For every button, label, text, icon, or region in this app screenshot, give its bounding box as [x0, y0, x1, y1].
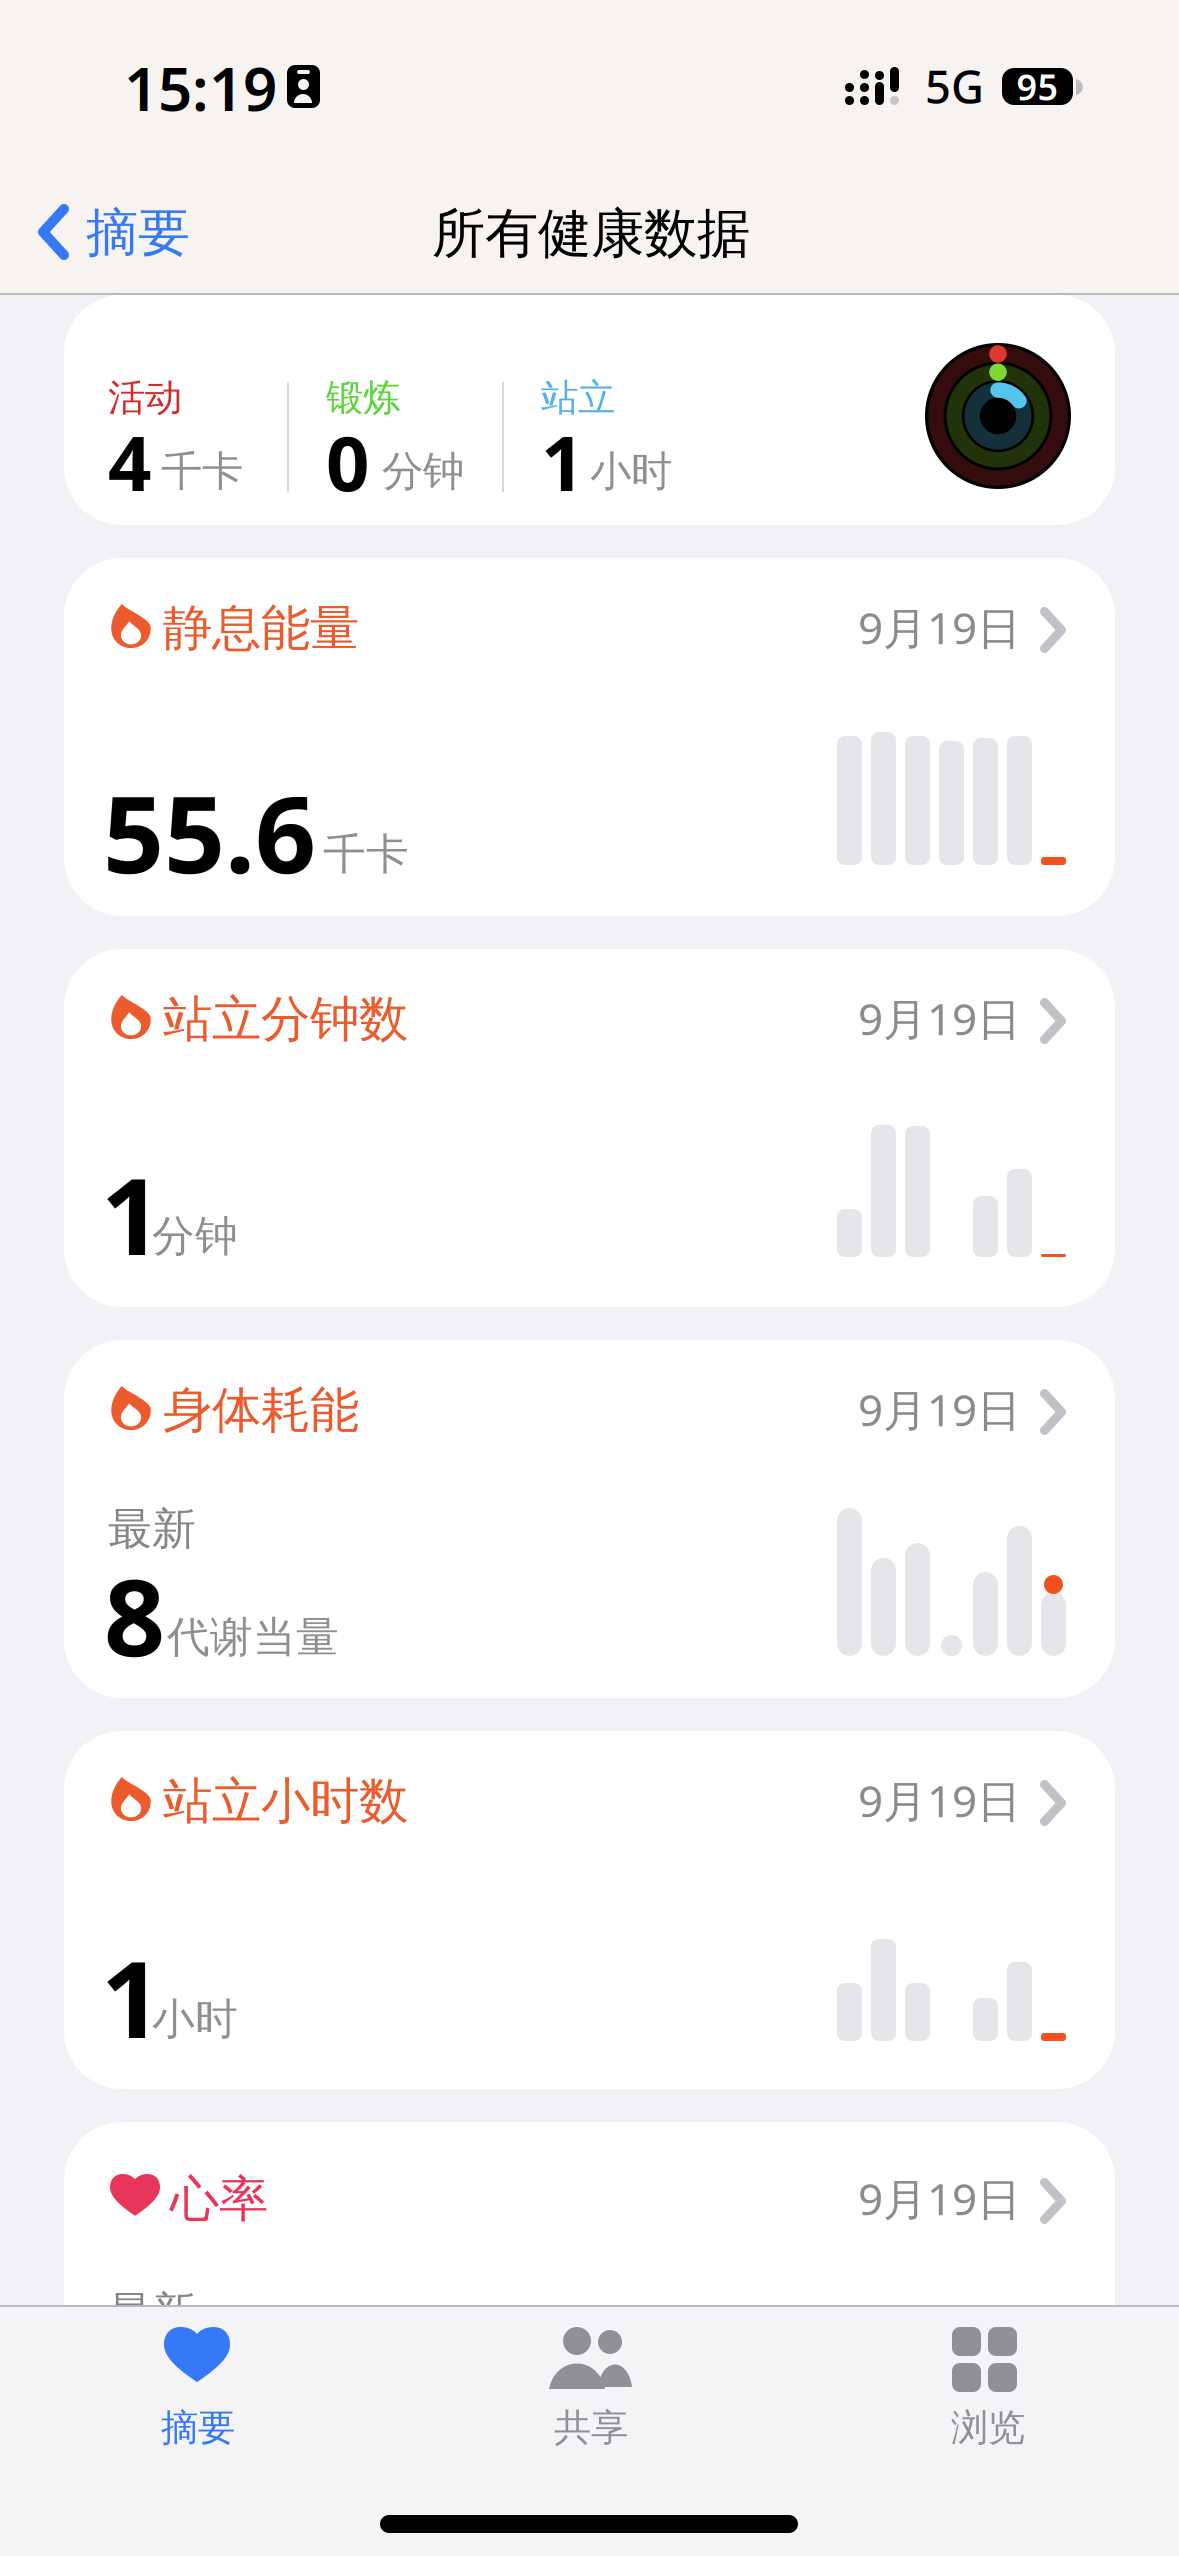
staticText: 1: [101, 1926, 162, 2068]
button[interactable]: 活动: [64, 295, 1115, 525]
staticText: 千卡: [323, 828, 409, 880]
staticText: 活动: [108, 375, 182, 421]
staticText: 摘要: [86, 201, 190, 265]
staticText: 0: [326, 411, 369, 512]
button[interactable]: 摘要: [0, 2305, 392, 2465]
staticText: 身体耗能: [163, 1380, 359, 1441]
staticText: 共享: [554, 2405, 628, 2451]
staticText: 9月19日: [858, 598, 1021, 656]
staticText: 55.6: [103, 761, 316, 903]
staticText: 9月19日: [858, 2169, 1021, 2227]
staticText: 小时: [590, 446, 672, 497]
staticText: 5G: [925, 56, 984, 116]
staticText: 分钟: [382, 446, 464, 497]
staticText: 95: [1016, 63, 1058, 110]
staticText: 小时: [152, 1993, 238, 2045]
button[interactable]: 返回摘要: [38, 201, 190, 265]
button[interactable]: 浏览: [786, 2305, 1178, 2465]
staticText: 所有健康数据: [432, 201, 750, 266]
button[interactable]: 站立小时数: [64, 1731, 1115, 2089]
button[interactable]: 静息能量: [64, 558, 1115, 916]
staticText: 4: [108, 411, 151, 512]
button[interactable]: 站立分钟数: [64, 949, 1115, 1307]
staticText: 9月19日: [858, 1380, 1021, 1438]
staticText: 锻炼: [326, 375, 400, 421]
staticText: 心率: [170, 2169, 268, 2230]
staticText: 浏览: [951, 2405, 1025, 2451]
staticText: 千卡: [161, 446, 243, 497]
staticText: 9月19日: [858, 1771, 1021, 1829]
staticText: 静息能量: [163, 598, 359, 659]
staticText: 最新: [108, 1502, 196, 1556]
staticText: 站立: [541, 375, 615, 421]
staticText: 8: [104, 1544, 165, 1686]
staticText: 站立小时数: [163, 1771, 408, 1832]
staticText: 最新: [108, 2286, 196, 2340]
staticText: 9月19日: [858, 989, 1021, 1047]
staticText: 摘要: [161, 2405, 235, 2451]
staticText: 代谢当量: [167, 1611, 339, 1663]
staticText: 站立分钟数: [163, 989, 408, 1050]
button[interactable]: 心率: [64, 2122, 1115, 2480]
button[interactable]: 身体耗能: [64, 1340, 1115, 1698]
staticText: 1: [541, 411, 584, 512]
staticText: 1: [101, 1143, 162, 1285]
staticText: 分钟: [152, 1210, 238, 1262]
button[interactable]: 共享: [393, 2305, 785, 2465]
staticText: 15:19: [124, 48, 277, 128]
